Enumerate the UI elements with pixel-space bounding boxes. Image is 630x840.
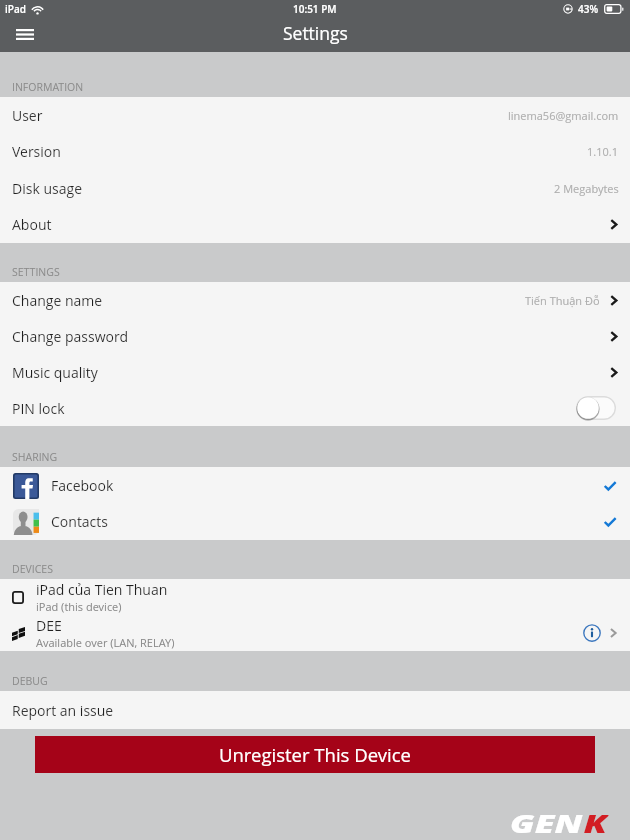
button[interactable]: DEE — [0, 615, 630, 651]
button[interactable]: Open navigation menu — [0, 18, 50, 52]
button[interactable]: Unregister This Device — [35, 736, 595, 773]
staticText: Change password — [12, 327, 129, 346]
staticText: Settings — [283, 21, 348, 45]
staticText: SHARING — [12, 450, 58, 464]
staticText: SETTINGS — [12, 265, 60, 279]
staticText: Report an issue — [12, 701, 114, 720]
staticText: 1.10.1 — [587, 144, 619, 159]
staticText: About — [12, 215, 52, 234]
staticText: DEE — [36, 616, 62, 635]
staticText: Change name — [12, 291, 103, 310]
staticText: iPad — [5, 2, 26, 16]
staticText: Available over (LAN, RELAY) — [36, 635, 175, 650]
staticText: linema56@gmail.com — [508, 108, 619, 123]
button[interactable]: User — [0, 97, 630, 134]
button[interactable]: Change name — [0, 282, 630, 318]
staticText: Disk usage — [12, 179, 82, 198]
staticText: Facebook — [51, 476, 114, 495]
staticText: K — [583, 807, 608, 833]
staticText: GEN — [510, 807, 583, 833]
staticText: INFORMATION — [12, 80, 84, 94]
staticText: Version — [12, 142, 61, 161]
staticText: PIN lock — [12, 399, 65, 418]
staticText: iPad (this device) — [36, 599, 122, 614]
staticText: Unregister This Device — [219, 742, 411, 767]
staticText: iPad của Tien Thuan — [36, 580, 168, 599]
staticText: 10:51 PM — [293, 2, 337, 16]
staticText: Contacts — [51, 512, 108, 531]
button[interactable]: Change password — [0, 318, 630, 354]
staticText: Music quality — [12, 363, 98, 382]
button[interactable]: Version — [0, 133, 630, 170]
staticText: 43% — [578, 2, 599, 16]
button[interactable]: Contacts — [0, 503, 630, 540]
staticText: User — [12, 106, 43, 125]
button[interactable]: iPad của Tien Thuan — [0, 579, 630, 615]
staticText: Tiến Thuận Đỗ — [525, 293, 600, 308]
button[interactable]: About — [0, 206, 630, 243]
button[interactable]: Facebook — [0, 467, 630, 504]
button[interactable]: Music quality — [0, 354, 630, 390]
button[interactable]: PIN lock — [0, 390, 630, 426]
button[interactable]: More info about DEE — [581, 622, 603, 644]
staticText: DEVICES — [12, 562, 53, 576]
button[interactable]: Disk usage — [0, 170, 630, 207]
button[interactable]: Report an issue — [0, 691, 630, 729]
staticText: 2 Megabytes — [554, 181, 619, 196]
staticText: DEBUG — [12, 674, 48, 688]
